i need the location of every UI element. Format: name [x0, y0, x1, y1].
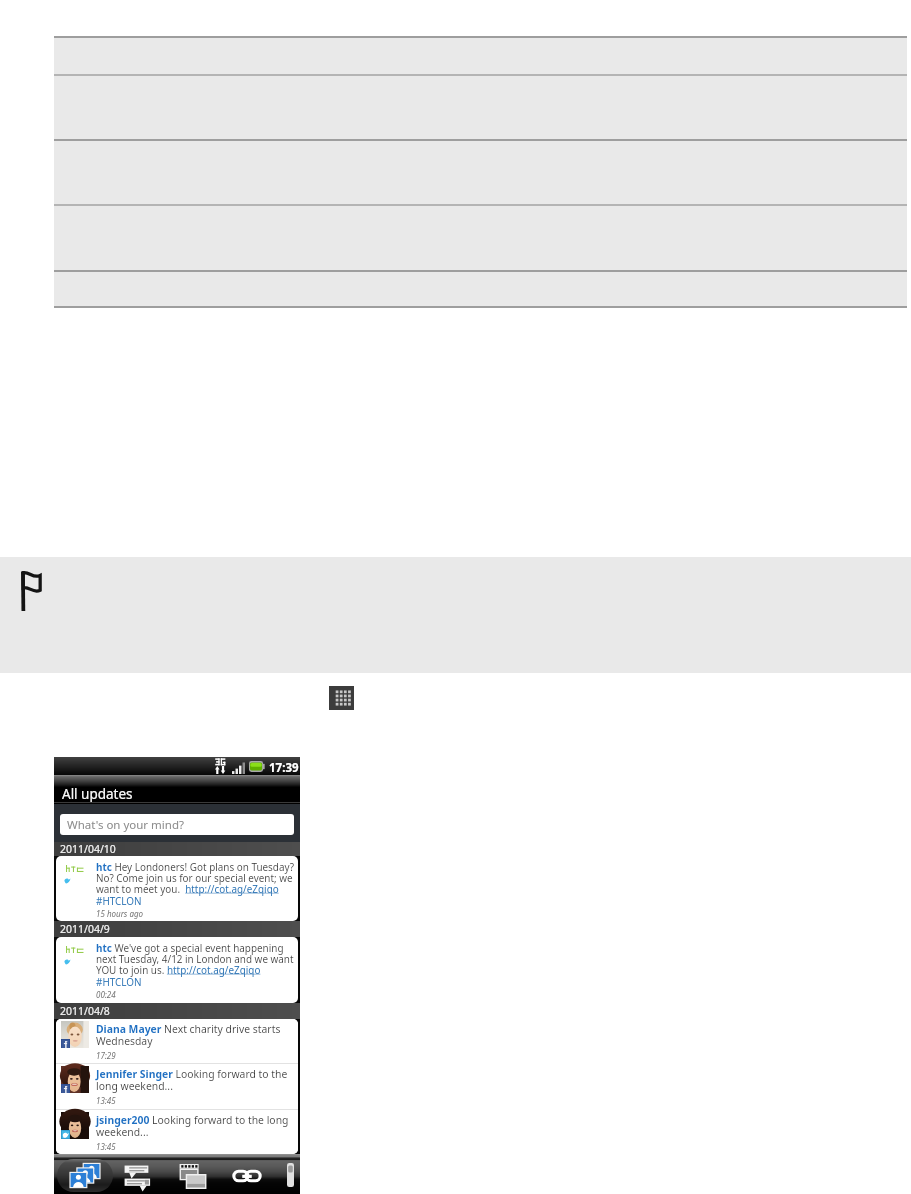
- button[interactable]: Messages: [124, 1164, 153, 1190]
- staticText: Jennifer Singer Looking forward to the: [96, 1067, 288, 1081]
- button[interactable]: More: [287, 1163, 297, 1187]
- staticText: YOU to join us. http://cot.ag/eZqiqo: [96, 963, 261, 976]
- button[interactable]: Jennifer Singer Looking forward to the: [56, 1064, 298, 1109]
- staticText: No? Come join us for our special event; …: [96, 871, 293, 884]
- button[interactable]: htc Hey Londoners! Got plans on Tuesday?: [56, 856, 298, 921]
- staticText: #HTCLON: [96, 975, 142, 988]
- staticText: 2011/04/10: [60, 842, 116, 856]
- button[interactable]: Diana Mayer Next charity drive starts: [56, 1019, 298, 1063]
- button[interactable]: Photos: [179, 1164, 207, 1189]
- staticText: 13:45: [96, 1095, 116, 1106]
- button[interactable]: Links: [233, 1170, 261, 1182]
- staticText: 2011/04/8: [60, 1004, 110, 1018]
- staticText: next Tuesday, 4/12 in London and we want: [96, 952, 294, 965]
- staticText: weekend...: [96, 1125, 149, 1139]
- button[interactable]: htc We've got a special event happening: [56, 937, 298, 1003]
- button[interactable]: All apps: [329, 686, 354, 710]
- staticText: 17:29: [96, 1050, 116, 1061]
- button[interactable]: All updates: [54, 775, 300, 804]
- staticText: htc Hey Londoners! Got plans on Tuesday?: [96, 860, 295, 873]
- staticText: jsinger200 Looking forward to the long: [96, 1113, 289, 1127]
- staticText: 2011/04/9: [60, 922, 110, 936]
- staticText: What's on your mind?: [67, 817, 184, 833]
- button[interactable]: Friend stream: [57, 1159, 113, 1192]
- staticText: #HTCLON: [96, 894, 142, 907]
- staticText: want to meet you. http://cot.ag/eZqiqo: [96, 882, 279, 895]
- staticText: 13:45: [96, 1141, 116, 1152]
- staticText: 00:24: [96, 989, 116, 1000]
- staticText: 17:39: [269, 760, 299, 776]
- staticText: long weekend...: [96, 1079, 173, 1093]
- staticText: htc We've got a special event happening: [96, 941, 284, 954]
- staticText: Diana Mayer Next charity drive starts: [96, 1022, 281, 1036]
- staticText: All updates: [62, 785, 133, 803]
- staticText: 15 hours ago: [96, 908, 144, 919]
- button[interactable]: What's on your mind?: [60, 814, 294, 835]
- staticText: Wednesday: [96, 1034, 153, 1048]
- button[interactable]: jsinger200 Looking forward to the long: [56, 1110, 298, 1154]
